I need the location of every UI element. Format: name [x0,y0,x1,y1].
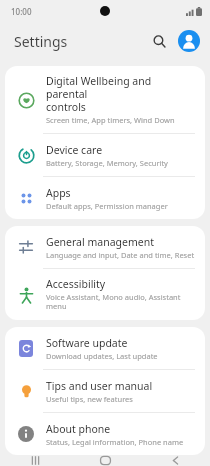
staticText: About phone [46,422,111,436]
staticText: Digital Wellbeing and parental controls [46,74,195,114]
staticText: Voice Assistant, Mono audio, Assistant m… [46,292,181,312]
staticText: Useful tips, new features [46,394,133,404]
staticText: Device care [46,143,103,157]
button[interactable]: Search [146,28,172,54]
staticText: 10:00 [11,6,32,17]
staticText: Apps [46,186,71,200]
button[interactable]: Accessibility [5,269,205,320]
staticText: Accessibility [46,277,106,291]
button[interactable]: General management [5,226,205,269]
staticText: General management [46,235,154,249]
staticText: Status, Legal information, Phone name [46,437,184,447]
button[interactable]: Recent apps [0,455,70,466]
button[interactable]: Apps [5,177,205,219]
staticText: Default apps, Permission manager [46,201,168,211]
button[interactable]: Device care [5,134,205,177]
button[interactable]: Software update [5,327,205,370]
button[interactable]: Tips and user manual [5,370,205,413]
staticText: Download updates, Last update [46,351,158,361]
staticText: Settings [14,32,68,51]
button[interactable]: Account [178,30,200,52]
staticText: Software update [46,336,128,350]
button[interactable]: Digital Wellbeing and parental controls [5,66,205,134]
staticText: Language and input, Date and time, Reset [46,250,195,260]
button[interactable]: About phone [5,413,205,455]
staticText: Tips and user manual [46,379,153,393]
staticText: Battery, Storage, Memory, Security [46,158,168,168]
button[interactable]: Home [70,455,140,466]
staticText: Screen time, App timers, Wind Down [46,115,175,125]
button[interactable]: Back [140,455,210,466]
